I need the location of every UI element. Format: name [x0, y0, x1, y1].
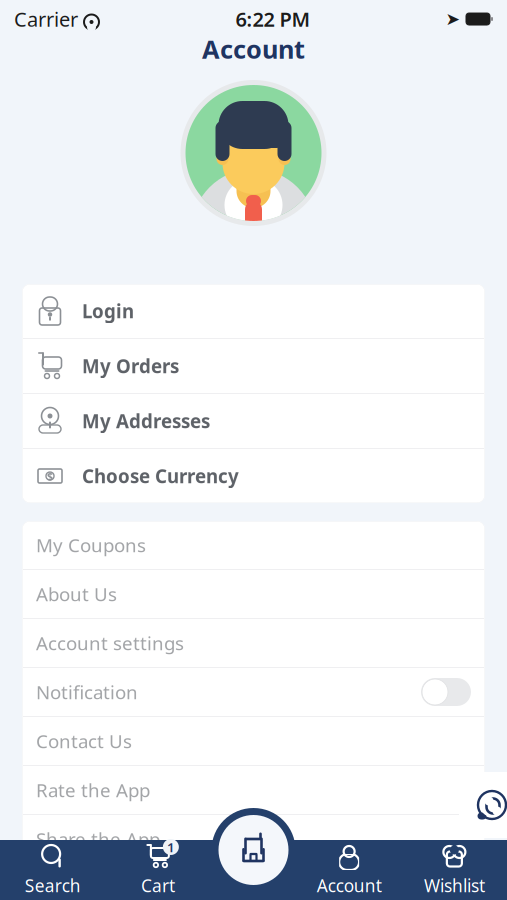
- button[interactable]: Search: [0, 840, 105, 900]
- button[interactable]: Chat on WhatsApp: [459, 772, 507, 838]
- button[interactable]: My Addresses: [22, 394, 485, 449]
- staticText: Carrier: [14, 6, 78, 32]
- button[interactable]: Notification: [22, 668, 485, 717]
- staticText: My Coupons: [36, 533, 146, 557]
- button[interactable]: About Us: [22, 570, 485, 619]
- staticText: My Addresses: [82, 409, 210, 433]
- staticText: Rate the App: [36, 778, 150, 802]
- staticText: Account: [202, 32, 305, 66]
- staticText: Choose Currency: [82, 464, 239, 488]
- staticText: ➤: [445, 9, 460, 29]
- staticText: Share the App: [36, 827, 160, 851]
- staticText: $: [47, 469, 53, 483]
- button[interactable]: My Orders: [22, 339, 485, 394]
- staticText: About Us: [36, 582, 117, 606]
- button[interactable]: Home: [211, 808, 295, 892]
- staticText: 1: [167, 838, 175, 856]
- button[interactable]: 1: [105, 840, 210, 900]
- button[interactable]: $: [22, 449, 485, 503]
- button[interactable]: Contact Us: [22, 717, 485, 766]
- staticText: Login: [82, 299, 134, 323]
- staticText: Account settings: [36, 631, 184, 655]
- button[interactable]: My Coupons: [22, 521, 485, 570]
- button[interactable]: Wishlist: [402, 840, 507, 900]
- staticText: 6:22 PM: [235, 6, 310, 32]
- staticText: Account: [317, 874, 382, 897]
- staticText: Search: [25, 874, 81, 897]
- button[interactable]: Account settings: [22, 619, 485, 668]
- staticText: Notification: [36, 680, 138, 704]
- button[interactable]: Login: [22, 284, 485, 339]
- staticText: Wishlist: [424, 874, 485, 897]
- button[interactable]: Rate the App: [22, 766, 485, 815]
- button[interactable]: Share the App: [22, 815, 485, 863]
- staticText: Cart: [141, 874, 175, 897]
- staticText: My Orders: [82, 354, 179, 378]
- button[interactable]: Account: [296, 840, 402, 900]
- staticText: Contact Us: [36, 729, 132, 753]
